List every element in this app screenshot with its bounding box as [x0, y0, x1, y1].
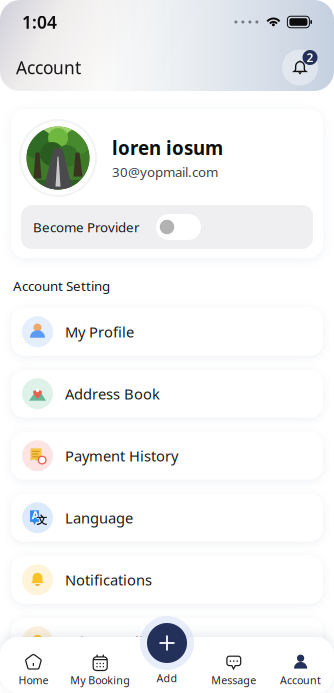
- button[interactable]: Message: [200, 637, 267, 693]
- button[interactable]: Privacy Policy: [11, 618, 323, 666]
- staticText: Home: [18, 673, 48, 687]
- button[interactable]: Add: [134, 618, 200, 693]
- staticText: Become Provider: [33, 218, 140, 236]
- staticText: 1:04: [22, 10, 57, 33]
- staticText: Account: [16, 56, 81, 79]
- staticText: 文: [37, 514, 48, 527]
- button[interactable]: My Booking: [67, 637, 134, 693]
- staticText: Payment History: [65, 446, 178, 465]
- staticText: loren iosum: [112, 135, 223, 160]
- button[interactable]: Home: [0, 637, 67, 693]
- staticText: Add: [156, 671, 177, 685]
- staticText: Notifications: [65, 570, 152, 589]
- staticText: 2: [306, 49, 313, 65]
- staticText: My Booking: [70, 673, 130, 687]
- staticText: Account: [280, 673, 321, 687]
- staticText: My Profile: [65, 322, 134, 341]
- button[interactable]: A: [11, 494, 323, 542]
- button[interactable]: Address Book: [11, 370, 323, 418]
- staticText: 30@yopmail.com: [112, 163, 218, 181]
- button[interactable]: Notifications: [11, 556, 323, 604]
- button[interactable]: Account: [267, 637, 334, 693]
- button[interactable]: My Profile: [11, 308, 323, 356]
- button[interactable]: Notifications: [280, 47, 320, 87]
- staticText: Message: [211, 673, 256, 687]
- button[interactable]: Payment History: [11, 432, 323, 480]
- staticText: Language: [65, 508, 133, 527]
- staticText: A: [32, 508, 39, 522]
- staticText: Address Book: [65, 384, 160, 403]
- button[interactable]: Become Provider: [156, 214, 201, 240]
- staticText: Account Setting: [13, 277, 110, 295]
- staticText: Privacy Policy: [65, 632, 157, 651]
